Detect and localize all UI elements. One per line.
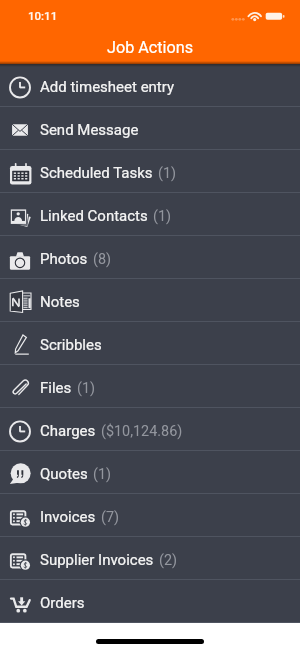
staticText: (2) <box>159 552 178 569</box>
staticText: (1) <box>158 165 177 182</box>
staticText: 10:11 <box>28 9 58 22</box>
staticText: (1) <box>153 208 172 225</box>
staticText: Orders <box>40 594 85 612</box>
staticText: Scribbles <box>40 336 102 354</box>
staticText: Quotes <box>40 465 88 483</box>
staticText: (1) <box>77 380 96 397</box>
staticText: Scheduled Tasks <box>40 164 153 182</box>
staticText: Invoices <box>40 508 96 526</box>
staticText: Supplier Invoices <box>40 551 154 569</box>
staticText: Linked Contacts <box>40 207 148 225</box>
staticText: Add timesheet entry <box>40 78 175 96</box>
button[interactable]: Charges <box>0 408 300 450</box>
button[interactable]: Notes <box>0 279 300 321</box>
staticText: Job Actions <box>107 38 194 57</box>
button[interactable]: Quotes <box>0 451 300 493</box>
button[interactable]: Scribbles <box>0 322 300 364</box>
button[interactable]: Linked Contacts <box>0 193 300 235</box>
button[interactable]: Orders <box>0 580 300 622</box>
staticText: Notes <box>40 293 80 311</box>
staticText: ($10,124.86) <box>101 423 183 440</box>
staticText: (1) <box>93 466 112 483</box>
staticText: Charges <box>40 422 96 440</box>
staticText: Send Message <box>40 121 139 139</box>
button[interactable]: Send Message <box>0 107 300 149</box>
staticText: Photos <box>40 250 88 268</box>
staticText: Files <box>40 379 72 397</box>
button[interactable]: Files <box>0 365 300 407</box>
button[interactable]: Invoices <box>0 494 300 536</box>
button[interactable]: Photos <box>0 236 300 278</box>
staticText: (7) <box>101 509 120 526</box>
button[interactable]: Scheduled Tasks <box>0 150 300 192</box>
button[interactable]: Add timesheet entry <box>0 64 300 106</box>
button[interactable]: Supplier Invoices <box>0 537 300 579</box>
staticText: (8) <box>93 251 112 268</box>
